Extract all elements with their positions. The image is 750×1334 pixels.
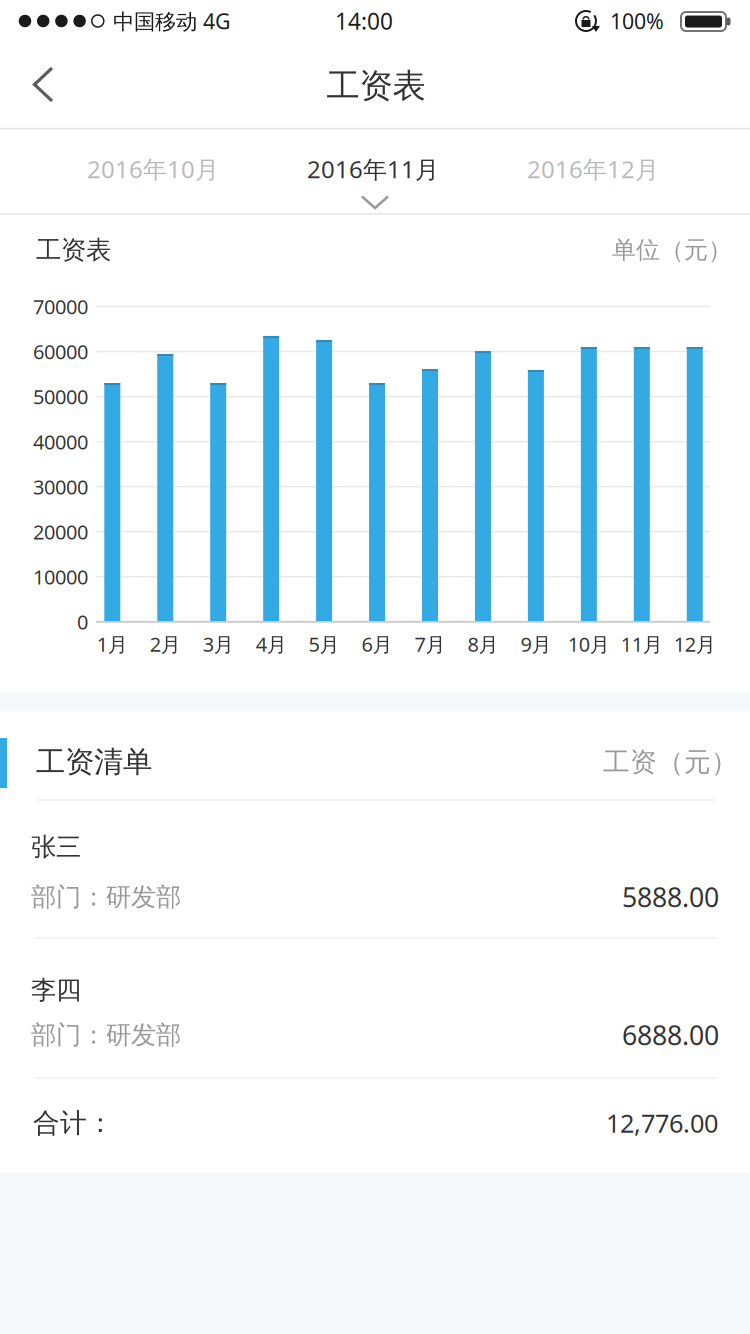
staticText: 工资（元） (603, 746, 738, 778)
staticText: 5888.00 (622, 879, 719, 915)
staticText: 20000 (33, 518, 88, 545)
staticText: 部门：研发部 (31, 881, 181, 912)
staticText: 4月 (256, 631, 287, 657)
staticText: 100% (610, 7, 664, 35)
staticText: 李四 (31, 974, 81, 1005)
staticText: 70000 (33, 293, 88, 320)
staticText: 11月 (621, 631, 663, 657)
staticText: 张三 (31, 831, 81, 862)
staticText: 2016年11月 (307, 153, 439, 185)
staticText: 60000 (33, 338, 88, 365)
staticText: 工资清单 (36, 744, 152, 780)
button[interactable]: 2016年10月 (43, 127, 263, 211)
button[interactable]: 2016年12月 (483, 127, 703, 211)
staticText: 2月 (150, 631, 181, 657)
staticText: 2016年12月 (527, 153, 659, 185)
staticText: 7月 (414, 631, 445, 657)
staticText: 6月 (362, 631, 393, 657)
staticText: 30000 (33, 473, 88, 500)
staticText: 50000 (33, 383, 88, 410)
staticText: 0 (77, 608, 88, 635)
button[interactable] (0, 40, 88, 128)
staticText: 14:00 (335, 6, 393, 36)
staticText: 中国移动 4G (113, 7, 231, 35)
staticText: 40000 (33, 428, 88, 455)
staticText: 1月 (97, 631, 128, 657)
staticText: 2016年10月 (87, 153, 219, 185)
button[interactable]: 2016年11月 (263, 127, 483, 211)
staticText: 12,776.00 (606, 1106, 718, 1140)
staticText: 5月 (309, 631, 340, 657)
staticText: 工资表 (326, 65, 425, 106)
staticText: 工资表 (36, 234, 111, 265)
staticText: 12月 (674, 631, 716, 657)
staticText: 8月 (467, 631, 498, 657)
staticText: 10月 (568, 631, 610, 657)
staticText: 10000 (33, 563, 88, 590)
staticText: 9月 (520, 631, 551, 657)
staticText: 单位（元） (612, 235, 732, 265)
staticText: 部门：研发部 (31, 1019, 181, 1050)
staticText: 合计： (33, 1107, 114, 1139)
staticText: 3月 (203, 631, 234, 657)
staticText: 6888.00 (622, 1017, 719, 1053)
